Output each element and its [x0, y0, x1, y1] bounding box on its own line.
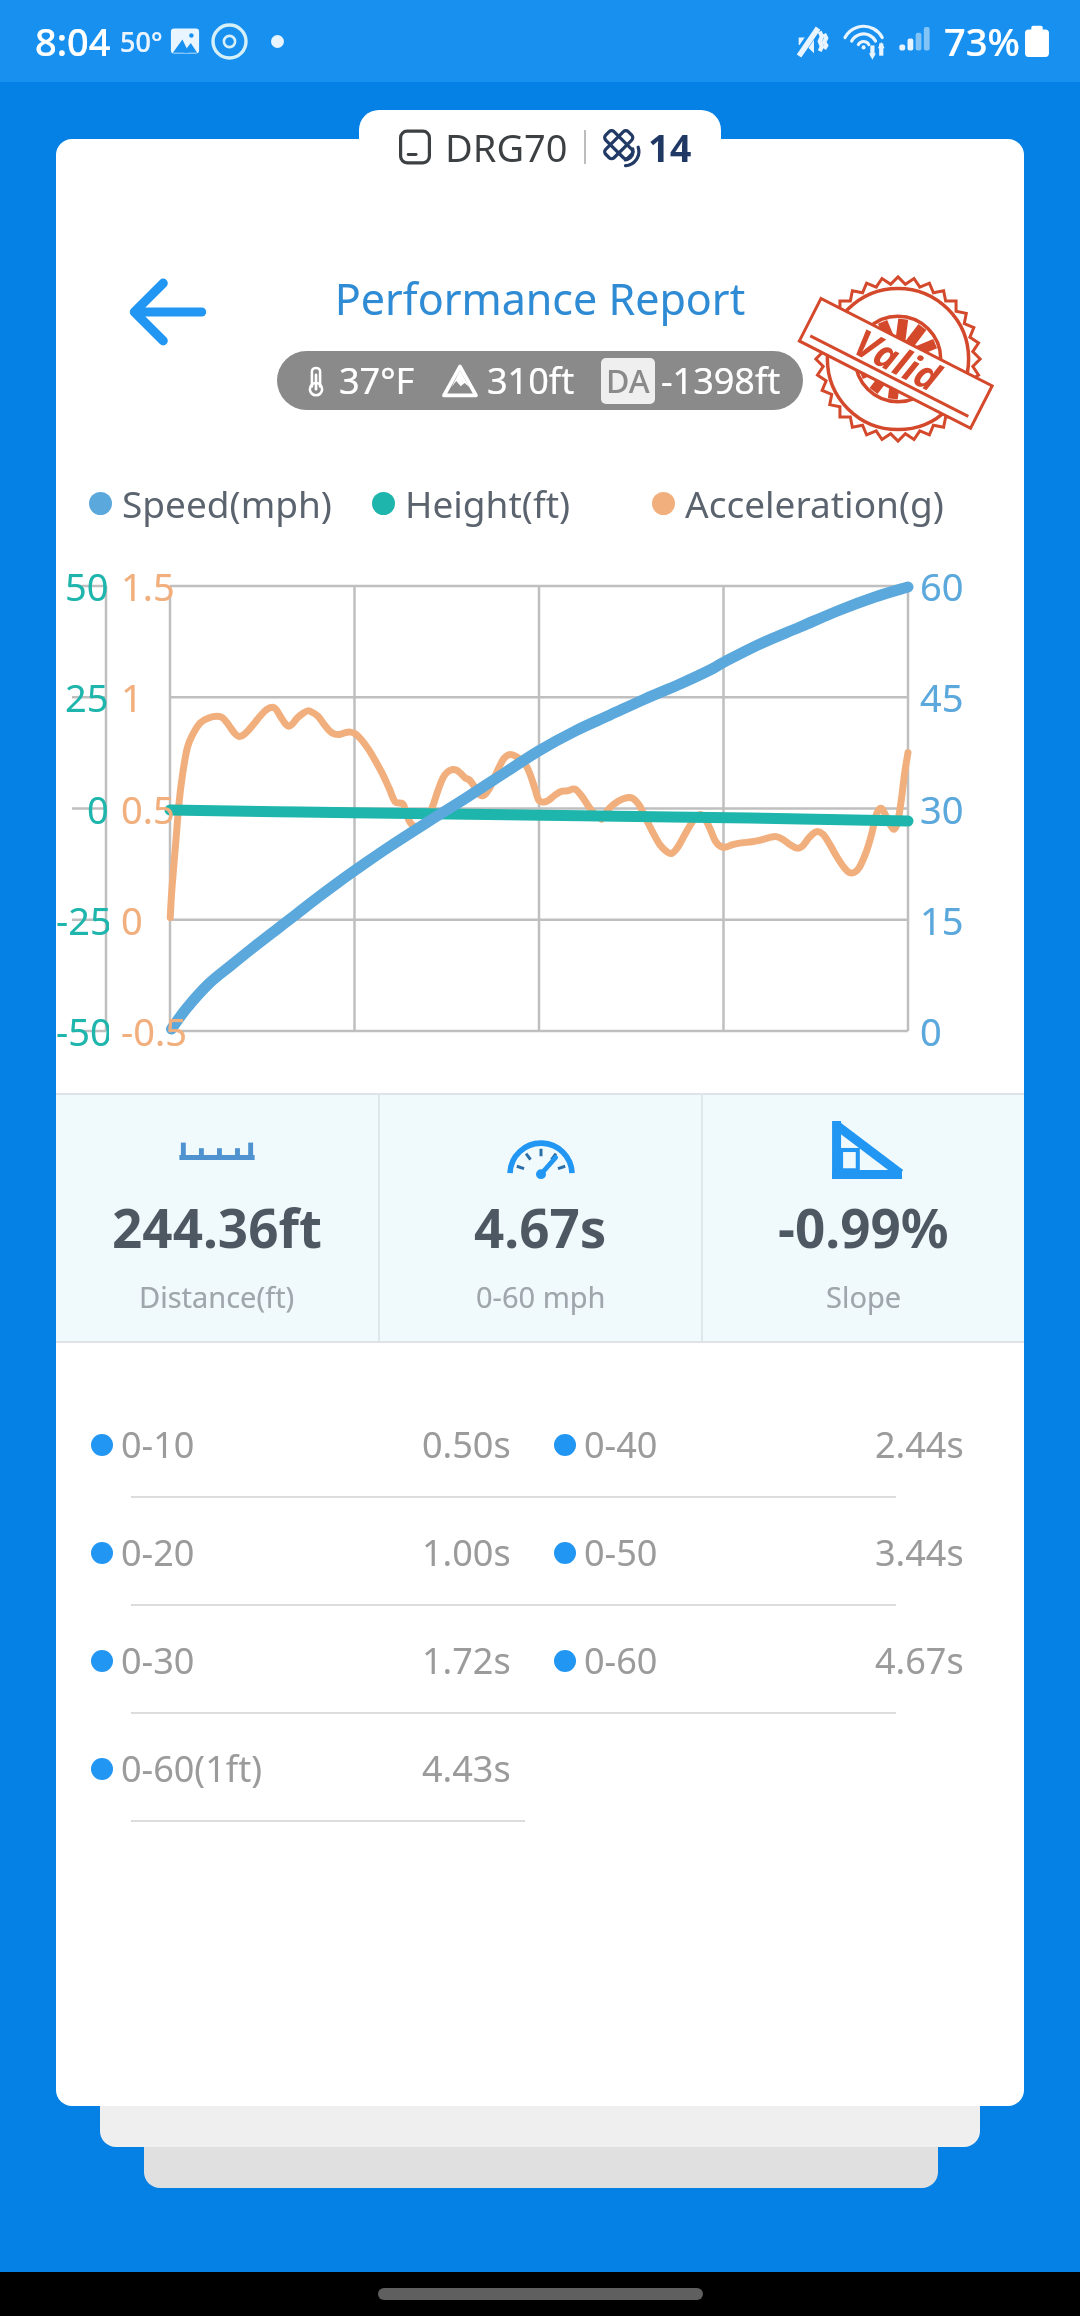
staticText: Speed(mph) [122, 478, 332, 528]
staticText: 4.67s [474, 1191, 607, 1263]
staticText: 310ft [487, 356, 575, 405]
staticText: 25 [65, 671, 109, 723]
staticText: -0.99% [778, 1191, 949, 1263]
staticText: 244.36ft [112, 1191, 322, 1263]
button[interactable]: Speed(mph) [89, 475, 332, 531]
staticText: 1.72s [422, 1636, 511, 1685]
button[interactable]: 0-30 [91, 1626, 511, 1694]
button[interactable]: Height(ft) [372, 475, 571, 531]
staticText: 1 [121, 671, 143, 723]
button[interactable]: 4.67s [380, 1093, 701, 1343]
staticText: Valid [846, 315, 950, 403]
staticText: 0-60(1ft) [121, 1744, 262, 1793]
button[interactable]: 0-20 [91, 1518, 511, 1586]
button[interactable]: 0-60(1ft) [91, 1734, 511, 1802]
staticText: 45 [920, 671, 964, 723]
staticText: 50 [65, 560, 109, 612]
staticText: 4.67s [875, 1636, 964, 1685]
button[interactable]: Acceleration(g) [652, 475, 944, 531]
staticText: 1.00s [422, 1528, 511, 1577]
staticText: -25 [56, 894, 109, 946]
staticText: 0 [121, 894, 143, 946]
button[interactable]: 0-60 [554, 1626, 964, 1694]
staticText: 8:04 [35, 15, 111, 67]
staticText: 0-20 [121, 1528, 195, 1577]
staticText: 37°F [339, 356, 415, 405]
staticText: 73% [944, 15, 1020, 67]
staticText: 14 [648, 121, 691, 173]
staticText: 0-60 mph [476, 1277, 606, 1316]
staticText: -0.5 [121, 1005, 187, 1057]
button[interactable]: DRG70 [359, 110, 721, 184]
staticText: 15 [920, 894, 964, 946]
staticText: 2.44s [875, 1420, 964, 1469]
button[interactable]: 0-50 [554, 1518, 964, 1586]
staticText: 4.43s [422, 1744, 511, 1793]
staticText: 0.5 [121, 783, 175, 835]
staticText: 0 [87, 783, 109, 835]
staticText: 50° [120, 23, 163, 60]
staticText: Performance Report [56, 269, 1024, 328]
staticText: DA [606, 359, 650, 403]
staticText: 0-40 [584, 1420, 658, 1469]
staticText: Distance(ft) [139, 1277, 295, 1316]
staticText: 0-60 [584, 1636, 658, 1685]
staticText: 0-30 [121, 1636, 195, 1685]
button[interactable]: 244.36ft [56, 1093, 378, 1343]
button[interactable]: Back [100, 244, 236, 380]
staticText: Acceleration(g) [685, 478, 944, 528]
staticText: 0-10 [121, 1420, 195, 1469]
staticText: DRG70 [445, 121, 568, 173]
button[interactable]: -0.99% [703, 1093, 1024, 1343]
button[interactable]: 0-10 [91, 1410, 511, 1478]
staticText: 0-50 [584, 1528, 658, 1577]
staticText: Height(ft) [405, 478, 571, 528]
button[interactable]: 37°F [277, 351, 803, 410]
button[interactable]: 0-40 [554, 1410, 964, 1478]
staticText: Slope [826, 1277, 902, 1316]
staticText: 30 [920, 783, 964, 835]
staticText: -1398ft [661, 356, 781, 405]
staticText: -50 [56, 1005, 109, 1057]
staticText: 1.5 [121, 560, 175, 612]
staticText: 0 [920, 1005, 942, 1057]
staticText: 3.44s [875, 1528, 964, 1577]
staticText: 0.50s [422, 1420, 511, 1469]
staticText: 60 [920, 560, 964, 612]
